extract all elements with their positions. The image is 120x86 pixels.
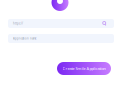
staticText: Application name: [13, 37, 37, 40]
staticText: https://: [13, 22, 23, 25]
staticText: Create Smile Application: [62, 66, 105, 71]
button[interactable]: Create Smile Application: [57, 62, 111, 75]
